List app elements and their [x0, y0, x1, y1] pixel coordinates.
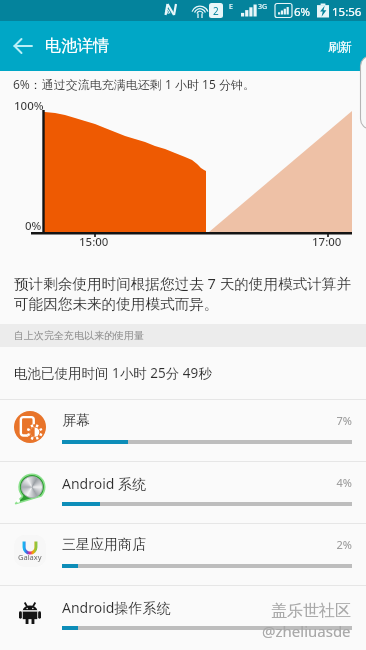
staticText: 2: [213, 4, 219, 18]
staticText: 100%: [14, 98, 44, 114]
staticText: 预计剩余使用时间根据您过去 7 天的使用模式计算并: [14, 273, 351, 293]
button[interactable]: 刷新: [314, 24, 366, 69]
staticText: 屏幕: [62, 412, 90, 430]
staticText: 盖乐世社区: [271, 601, 351, 621]
staticText: 15:00: [79, 234, 109, 250]
staticText: 6%：通过交流电充满电还剩 1 小时 15 分钟。: [13, 76, 255, 92]
button[interactable]: Android 系统: [0, 461, 366, 523]
button[interactable]: 屏幕: [0, 399, 366, 461]
staticText: 4%: [330, 475, 352, 490]
staticText: 17:00: [312, 234, 342, 250]
staticText: 电池详情: [45, 36, 109, 56]
staticText: 三星应用商店: [62, 536, 146, 554]
staticText: 15:56: [332, 4, 362, 20]
staticText: Galaxy: [18, 552, 42, 562]
staticText: 7%: [330, 413, 352, 428]
button[interactable]: Android操作系统: [0, 585, 366, 647]
staticText: 电池已使用时间 1小时 25分 49秒: [14, 364, 212, 382]
staticText: 2%: [330, 537, 352, 552]
staticText: 6%: [294, 4, 311, 20]
button[interactable]: Galaxy: [0, 523, 366, 585]
staticText: @zheliuasde: [262, 621, 351, 641]
staticText: 自上次完全充电以来的使用量: [14, 329, 144, 342]
button[interactable]: Back: [0, 21, 45, 71]
staticText: 0%: [25, 218, 42, 234]
staticText: 可能因您未来的使用模式而异。: [14, 295, 219, 313]
staticText: E: [229, 2, 233, 12]
staticText: [330, 599, 352, 614]
staticText: Android 系统: [62, 474, 147, 493]
staticText: 3G: [258, 2, 268, 12]
staticText: Android操作系统: [62, 598, 171, 617]
staticText: 刷新: [328, 39, 352, 54]
